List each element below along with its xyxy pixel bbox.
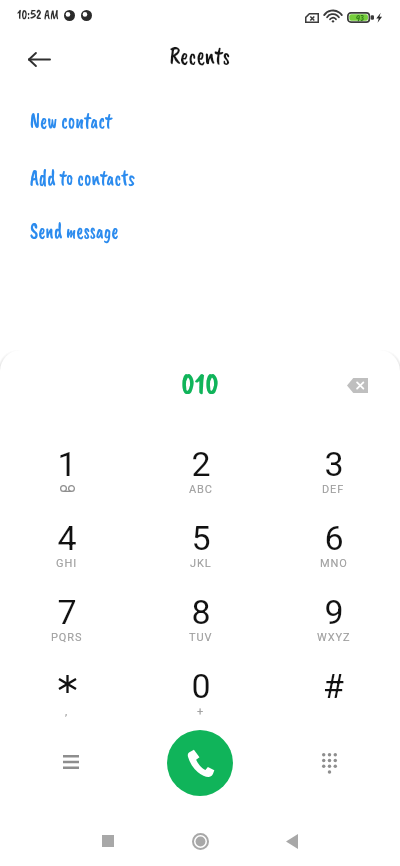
staticText: 6 [324, 518, 344, 558]
button[interactable]: Add to contacts [0, 157, 400, 197]
button[interactable]: 3 [267, 444, 400, 484]
button[interactable]: 8 [134, 592, 267, 632]
staticText: MNO [320, 557, 348, 570]
button[interactable]: 9 [267, 592, 400, 632]
staticText: 010 [181, 365, 219, 403]
staticText: GHI [56, 557, 78, 570]
button[interactable]: Send message [0, 210, 400, 250]
staticText: 0 [191, 666, 211, 706]
staticText: 5 [191, 518, 211, 558]
button[interactable]: , [0, 666, 134, 684]
staticText: 2 [191, 444, 211, 484]
button[interactable]: 6 [267, 518, 400, 558]
button[interactable]: 4 [0, 518, 134, 558]
staticText: JKL [190, 557, 212, 570]
button[interactable]: Recent apps [62, 816, 154, 866]
button[interactable]: Home [154, 816, 246, 866]
staticText: 10:52 AM [17, 7, 59, 23]
staticText: 93 [356, 12, 364, 23]
staticText: WXYZ [317, 631, 351, 644]
staticText: Recents [169, 38, 231, 69]
staticText: TUV [189, 631, 213, 644]
button[interactable]: 5 [134, 518, 267, 558]
staticText: 1 [57, 444, 77, 484]
staticText: 8 [191, 592, 211, 632]
button[interactable]: 7 [0, 592, 134, 632]
staticText: 3 [324, 444, 344, 484]
staticText: ABC [189, 483, 213, 496]
staticText: DEF [322, 483, 345, 496]
staticText: New contact [30, 106, 112, 135]
button[interactable]: Dialpad [309, 741, 350, 782]
staticText: PQRS [51, 631, 83, 644]
staticText: Add to contacts [30, 163, 135, 192]
button[interactable]: Back [246, 816, 338, 866]
button[interactable]: # [267, 666, 400, 706]
button[interactable]: Call [167, 730, 233, 796]
staticText: + [197, 705, 205, 718]
staticText: # [323, 666, 344, 706]
button[interactable]: 2 [134, 444, 267, 484]
button[interactable]: Back [23, 44, 55, 74]
button[interactable]: 0 [134, 666, 267, 706]
staticText: 9 [324, 592, 344, 632]
button[interactable]: New contact [0, 100, 400, 140]
button[interactable]: 1 [0, 444, 134, 484]
staticText: Send message [30, 216, 119, 245]
button[interactable]: Call log [50, 741, 91, 782]
staticText: 7 [57, 592, 77, 632]
staticText: 4 [57, 518, 77, 558]
staticText: , [65, 705, 69, 718]
button[interactable]: Backspace [338, 366, 376, 404]
